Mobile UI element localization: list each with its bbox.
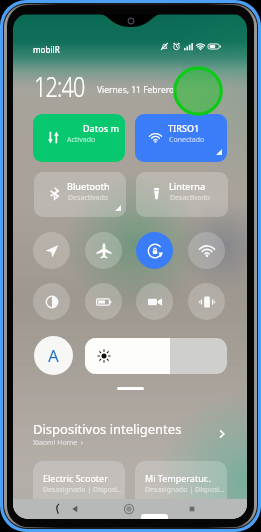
button[interactable]: TIRSO1 <box>135 114 227 162</box>
staticText: Linterna <box>169 180 206 192</box>
button[interactable]: Electric Scooter <box>33 461 125 511</box>
button[interactable]: Home <box>122 502 136 516</box>
staticText: mobilR <box>33 44 60 55</box>
staticText: 12:40 <box>34 68 85 105</box>
staticText: Dispositivos inteligentes <box>33 420 182 438</box>
staticText: Xiaomi Home › <box>33 438 83 448</box>
staticText: Electric Scooter <box>43 472 108 484</box>
staticText: Desasignado | Disposi… <box>43 485 123 495</box>
button[interactable]: Quick setting <box>85 283 122 320</box>
button[interactable]: Quick setting <box>136 232 173 269</box>
button[interactable]: Brightness <box>85 338 227 374</box>
staticText: Desasignado | Disposi… <box>145 485 225 495</box>
button[interactable]: Quick setting <box>188 232 225 269</box>
button[interactable]: Mi Temperatur.. <box>135 461 227 511</box>
button[interactable]: Dispositivos inteligentes <box>33 420 227 448</box>
staticText: Activado <box>67 135 96 145</box>
staticText: Mi Temperatur.. <box>145 472 211 484</box>
staticText: Conectado <box>169 135 205 145</box>
button[interactable]: Quick setting <box>188 283 225 320</box>
button[interactable]: Quick setting <box>33 232 70 269</box>
button[interactable]: Bluetooth <box>34 172 126 217</box>
staticText: Desactivado <box>170 193 211 203</box>
button[interactable]: Back <box>68 502 82 516</box>
button[interactable]: Recents <box>185 502 199 516</box>
button[interactable]: Auto brightness <box>34 336 73 375</box>
button[interactable]: Datos m <box>33 114 125 162</box>
button[interactable]: Quick setting <box>33 283 70 320</box>
staticText: Bluetooth <box>67 180 110 192</box>
staticText: TIRSO1 <box>168 122 200 134</box>
staticText: A <box>48 344 59 367</box>
staticText: Desactivado <box>68 193 109 203</box>
staticText: Viernes, 11 Febrero <box>97 84 175 96</box>
button[interactable]: Quick setting <box>136 283 173 320</box>
button[interactable]: Linterna <box>136 172 228 217</box>
button[interactable]: Quick setting <box>85 232 122 269</box>
staticText: Datos m <box>83 122 119 134</box>
